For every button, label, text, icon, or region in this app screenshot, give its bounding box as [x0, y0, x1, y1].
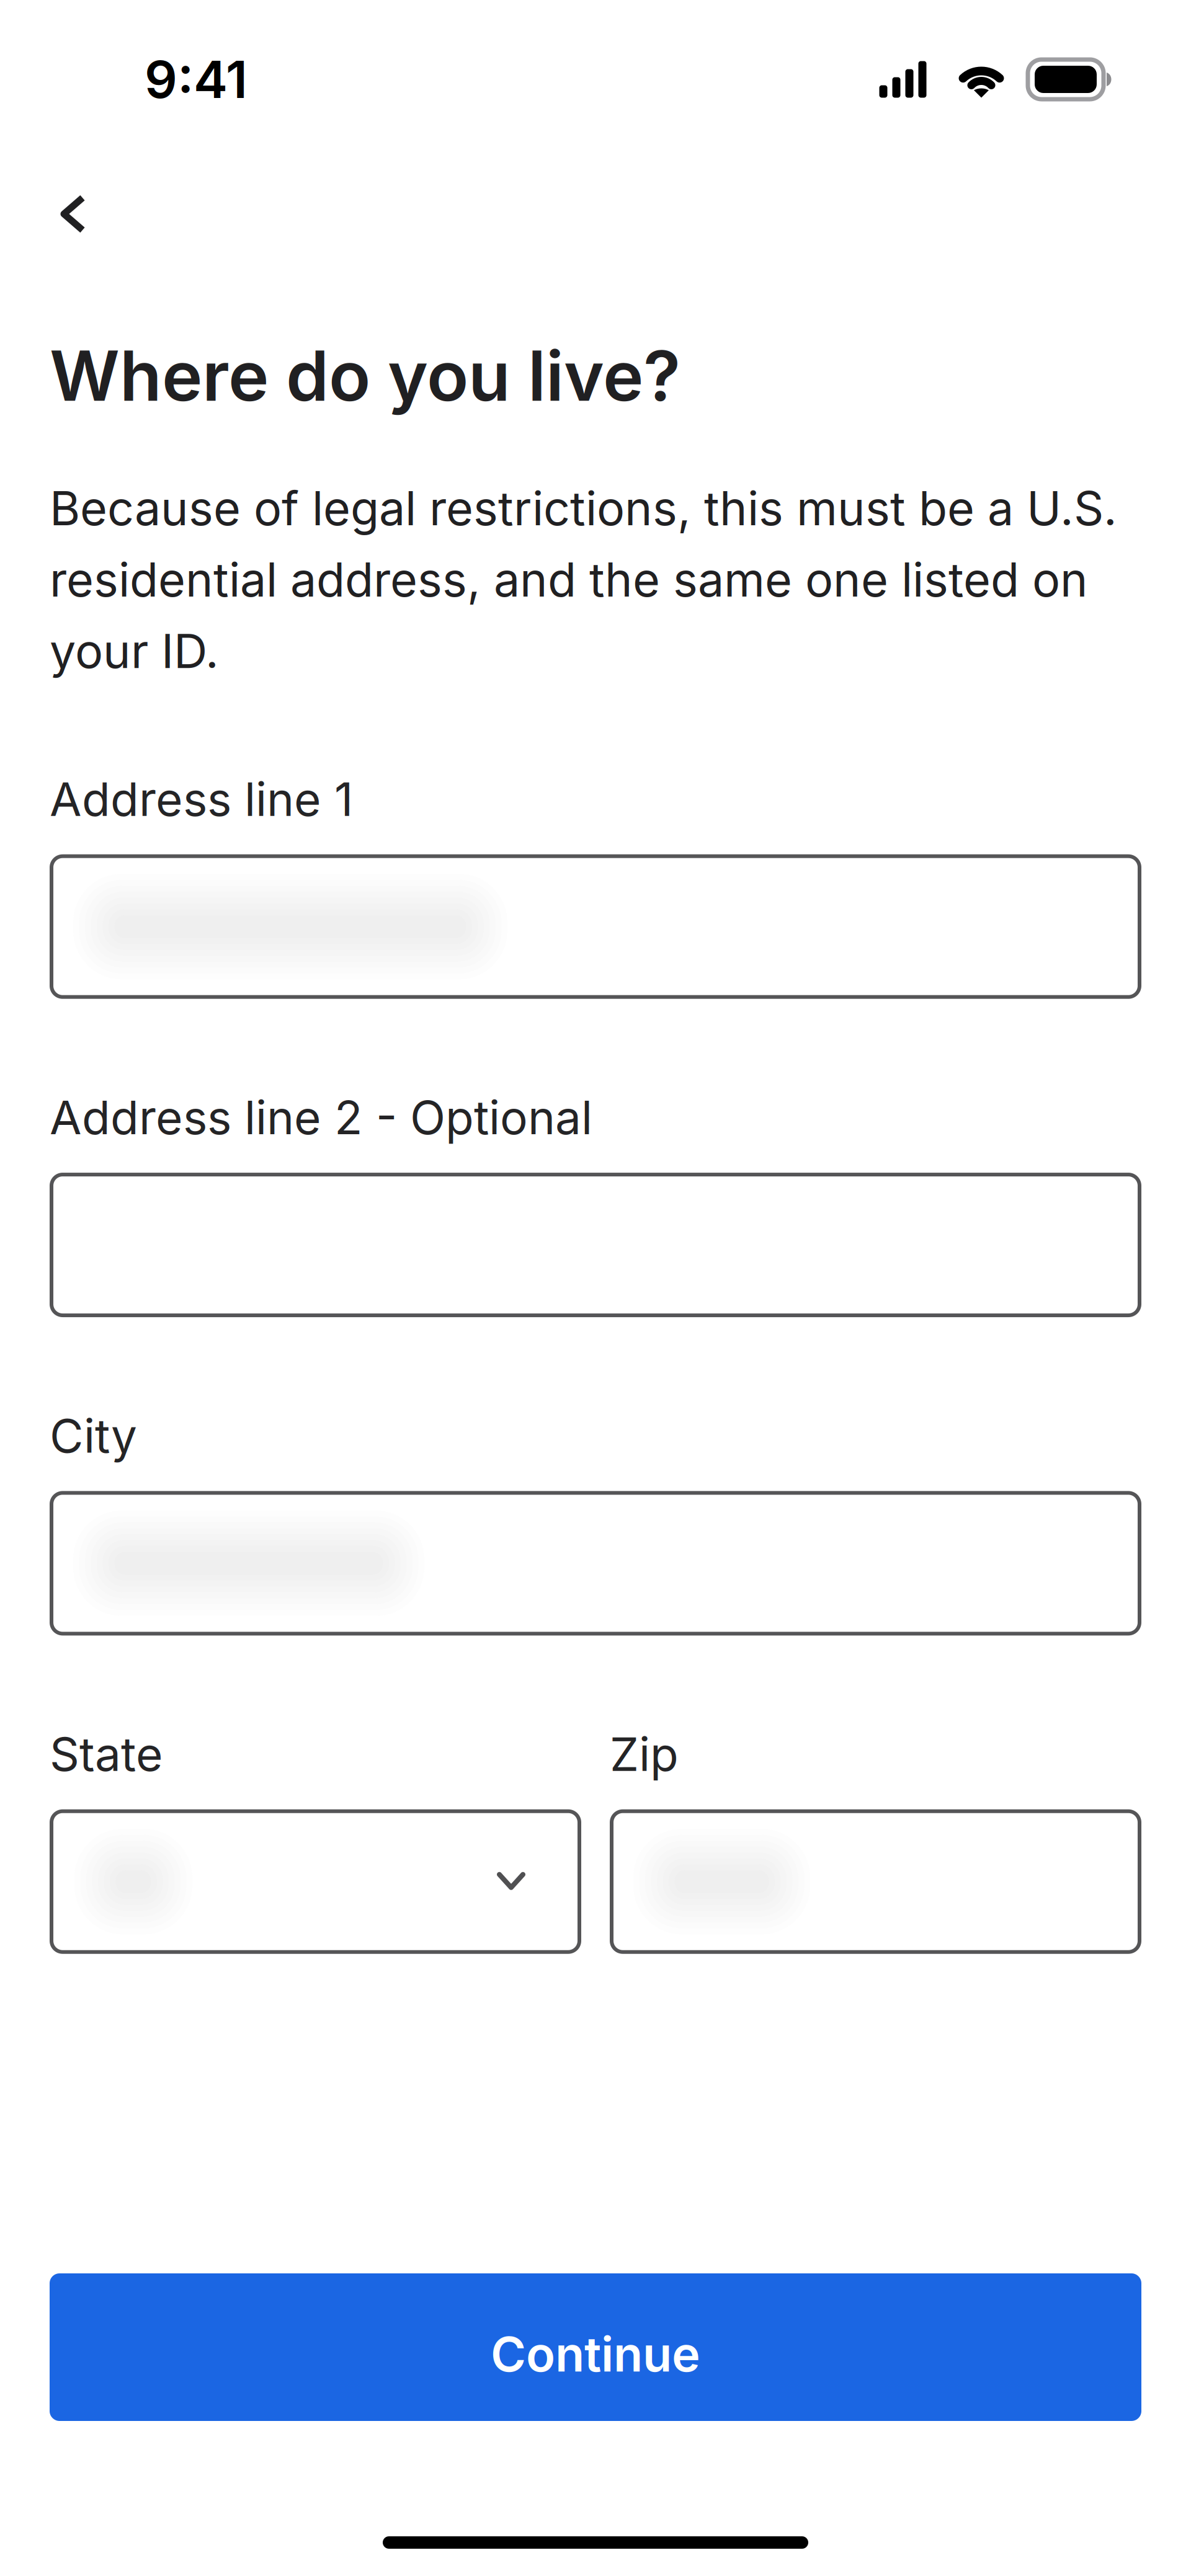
staticText: City: [50, 1408, 137, 1464]
staticText: Address line 1: [50, 771, 353, 827]
staticText: Where do you live?: [50, 334, 680, 417]
staticText: Zip: [610, 1726, 679, 1782]
staticText: Continue: [491, 2325, 700, 2383]
staticText: Address line 2 - Optional: [50, 1089, 592, 1145]
staticText: Because of legal restrictions, this must…: [50, 480, 1117, 679]
button[interactable]: Zip: [610, 1809, 1141, 1954]
staticText: 9:41: [145, 48, 248, 110]
button[interactable]: Address line 1: [50, 854, 1141, 999]
button[interactable]: Address line 2 - Optional: [50, 1173, 1141, 1317]
button[interactable]: City: [50, 1491, 1141, 1636]
staticText: State: [50, 1726, 163, 1782]
button[interactable]: Continue: [50, 2273, 1141, 2421]
button[interactable]: State: [50, 1809, 581, 1954]
button[interactable]: Back: [33, 174, 114, 254]
